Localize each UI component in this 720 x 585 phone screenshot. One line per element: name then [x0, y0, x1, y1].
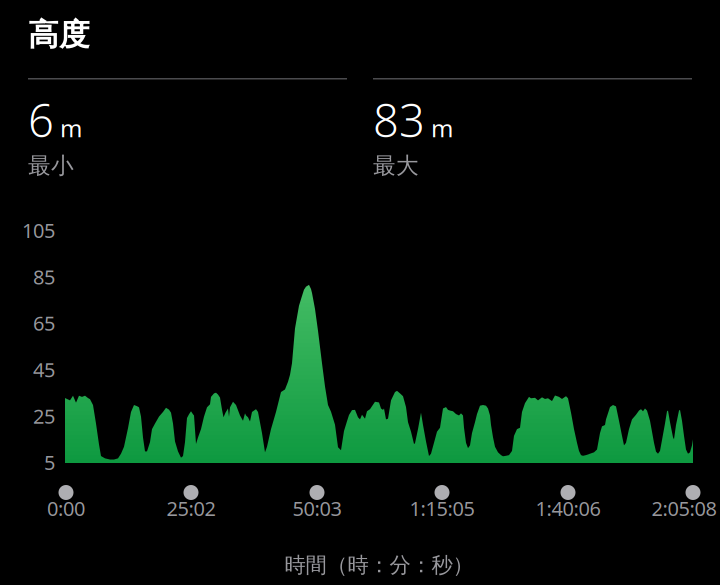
- staticText: 1:40:06: [535, 495, 600, 522]
- staticText: 25: [33, 403, 55, 429]
- staticText: m: [431, 112, 453, 144]
- staticText: 25:02: [166, 495, 215, 522]
- staticText: 45: [33, 356, 55, 383]
- staticText: 6: [28, 89, 54, 150]
- staticText: 65: [33, 310, 55, 336]
- staticText: 50:03: [292, 495, 341, 522]
- staticText: 5: [44, 449, 55, 476]
- staticText: 105: [22, 217, 55, 244]
- staticText: m: [60, 112, 82, 144]
- staticText: 85: [33, 263, 55, 290]
- staticText: 1:15:05: [409, 495, 474, 522]
- staticText: 0:00: [47, 495, 85, 522]
- staticText: 高度: [28, 16, 90, 54]
- staticText: 2:05:08: [651, 495, 716, 522]
- staticText: 時間（時：分：秒）: [284, 552, 473, 578]
- button[interactable]: Elevation chart: [65, 214, 693, 463]
- staticText: 最大: [373, 152, 419, 179]
- staticText: 83: [373, 89, 425, 150]
- button[interactable]: 83: [373, 78, 692, 174]
- button[interactable]: 6: [28, 78, 347, 174]
- staticText: 最小: [28, 152, 74, 179]
